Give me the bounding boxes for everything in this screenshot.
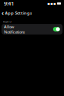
staticText: ‹: [1, 9, 3, 17]
staticText: ▪▪▪: [47, 1, 56, 6]
staticText: Allow Notifications: [4, 24, 25, 34]
button[interactable]: Allow Notifications: [1, 24, 62, 34]
staticText: 9:41: [4, 0, 14, 7]
staticText: App Settings: [5, 10, 32, 16]
button[interactable]: Back: [1, 10, 4, 16]
staticText: ALERTS: [3, 20, 11, 23]
